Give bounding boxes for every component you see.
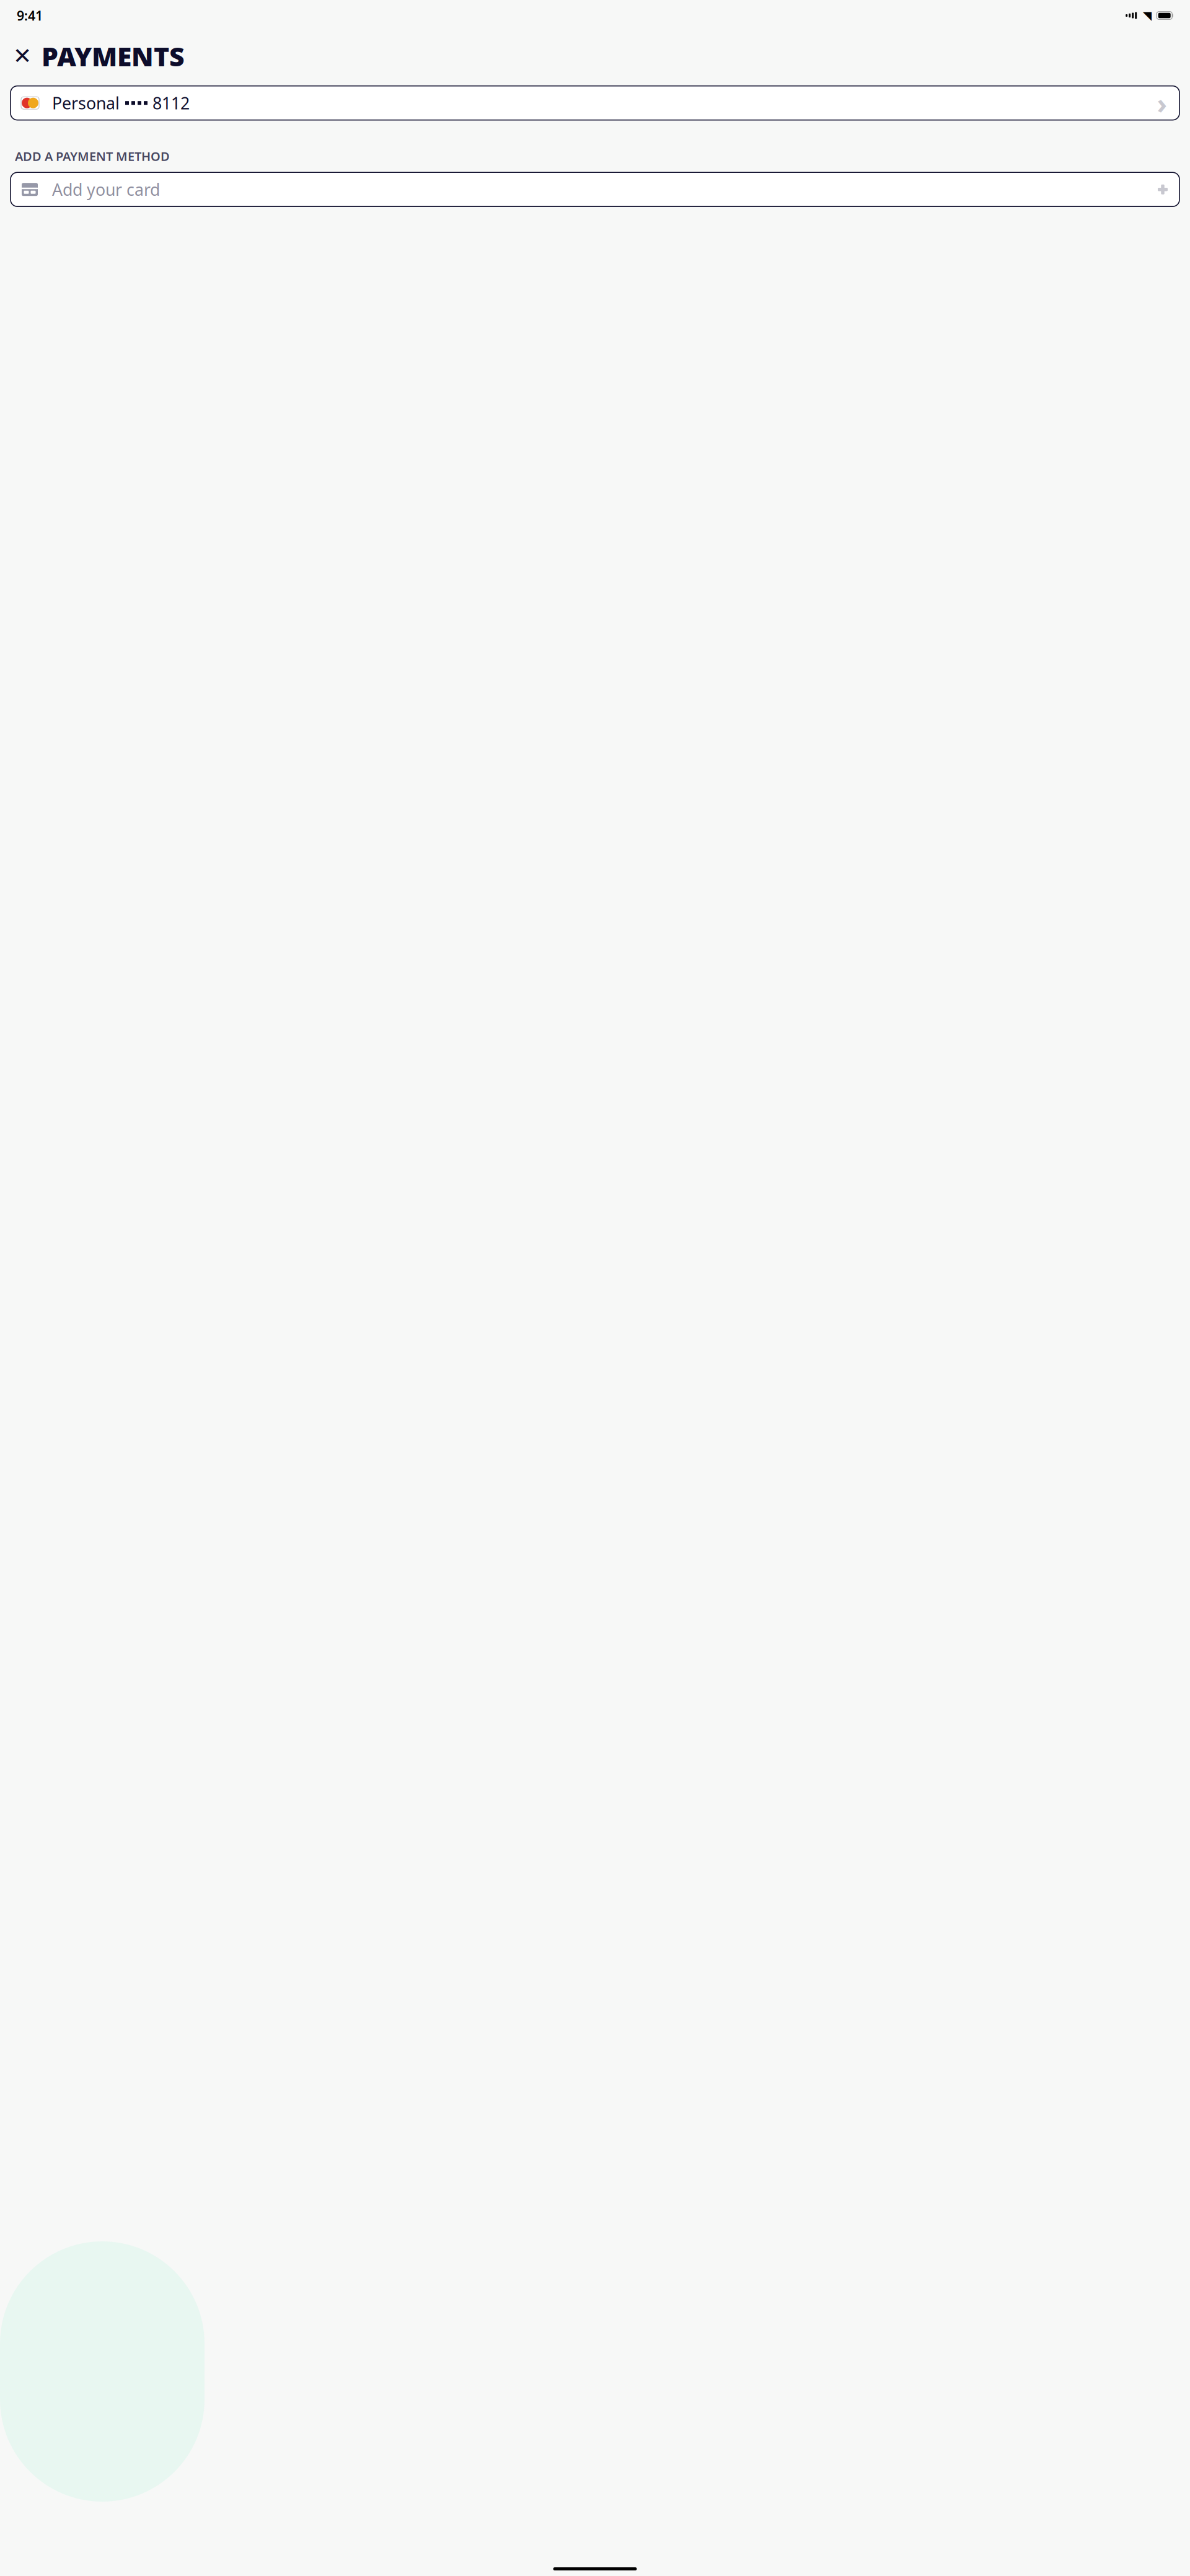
staticText: PAYMENTS — [42, 38, 185, 74]
staticText: › — [1157, 84, 1167, 122]
staticText: ADD A PAYMENT METHOD — [15, 148, 170, 164]
staticText: 9:41 — [17, 7, 43, 24]
staticText: Add your card — [52, 178, 160, 200]
button[interactable]: Close — [12, 45, 33, 66]
button[interactable]: Add your card — [11, 172, 1179, 206]
staticText: 8112 — [152, 92, 190, 114]
staticText: Personal — [52, 92, 120, 114]
staticText: ◥ — [1143, 9, 1151, 22]
button[interactable]: Personal — [11, 86, 1179, 120]
staticText: ✕ — [13, 43, 32, 69]
